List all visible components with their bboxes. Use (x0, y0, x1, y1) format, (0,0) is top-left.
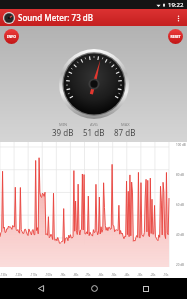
staticText: -130s (0, 273, 8, 277)
staticText: -20s (150, 273, 156, 277)
button[interactable]: Info (4, 29, 19, 44)
staticText: -10s (163, 273, 169, 277)
staticText: -60s (98, 273, 104, 277)
staticText: -90s (60, 273, 66, 277)
staticText: MIN (59, 122, 68, 127)
staticText: 39 dB (52, 127, 74, 138)
staticText: 20 dB (176, 263, 185, 267)
button[interactable]: Reset (168, 29, 183, 44)
staticText: Sound Meter: 73 dB (18, 12, 94, 23)
staticText: INFO (7, 34, 16, 39)
staticText: -80s (73, 273, 79, 277)
staticText: -120s (15, 273, 23, 277)
staticText: 40 dB (176, 233, 185, 237)
button[interactable]: Home (82, 278, 106, 299)
staticText: -50s (111, 273, 117, 277)
button[interactable]: More options (171, 11, 185, 25)
staticText: 100 dB (176, 143, 186, 147)
staticText: -100s (45, 273, 53, 277)
staticText: 80 dB (176, 173, 185, 177)
staticText: 51 dB (83, 127, 105, 138)
staticText: -70s (85, 273, 91, 277)
staticText: -30s (137, 273, 143, 277)
staticText: MAX (121, 122, 130, 127)
staticText: 60 dB (176, 203, 185, 207)
staticText: -40s (124, 273, 130, 277)
staticText: -110s (30, 273, 38, 277)
button[interactable]: Back (29, 278, 53, 299)
staticText: 19:22 (168, 1, 184, 9)
button[interactable]: Recent apps (134, 278, 158, 299)
staticText: RESET (170, 34, 181, 39)
staticText: 87 dB (114, 127, 136, 138)
staticText: AVG (90, 122, 98, 127)
button[interactable]: Sound level gauge (59, 49, 129, 119)
